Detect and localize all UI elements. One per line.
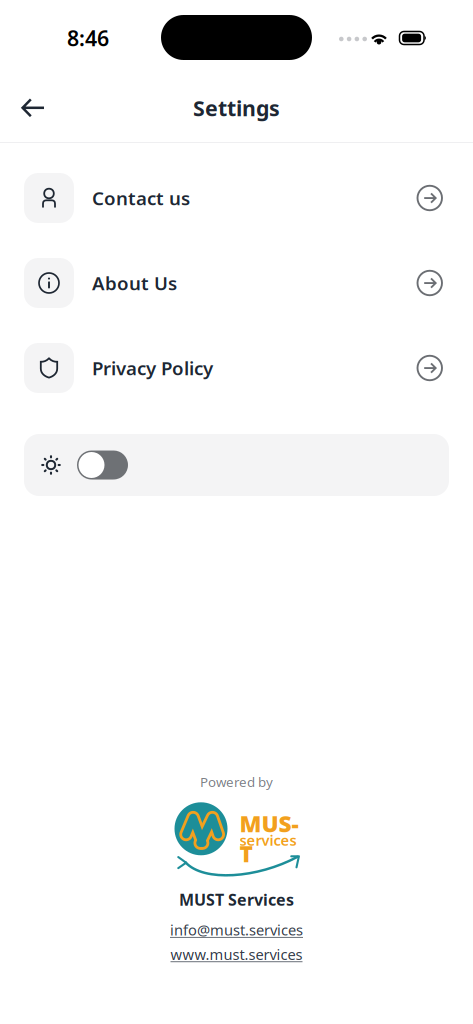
staticText: About Us: [92, 271, 177, 295]
staticText: info@must.services: [170, 920, 303, 939]
staticText: Settings: [193, 94, 280, 122]
button[interactable]: Back: [9, 85, 57, 131]
staticText: 8:46: [67, 24, 109, 52]
button[interactable]: About Us: [0, 258, 473, 308]
button[interactable]: Privacy Policy: [0, 343, 473, 393]
staticText: Contact us: [92, 186, 190, 210]
staticText: MUST: [239, 808, 298, 868]
staticText: www.must.services: [170, 944, 302, 964]
staticText: Privacy Policy: [92, 356, 213, 380]
staticText: Powered by: [200, 773, 273, 791]
button[interactable]: info@must.services: [170, 920, 303, 939]
button[interactable]: www.must.services: [170, 944, 302, 964]
staticText: services: [239, 830, 296, 850]
staticText: MUST Services: [179, 889, 294, 910]
button[interactable]: Contact us: [0, 173, 473, 223]
button[interactable]: Theme: [24, 434, 449, 496]
